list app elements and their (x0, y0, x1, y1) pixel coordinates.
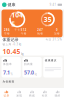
staticText: 运动 (45, 12, 51, 15)
button[interactable]: 商城 (26, 87, 38, 100)
button[interactable]: 社区 (38, 87, 51, 100)
staticText: kg (21, 52, 24, 56)
staticText: 加餐 (54, 32, 60, 35)
staticText: 体重记录 (2, 37, 18, 42)
staticText: 发现 (16, 94, 22, 97)
staticText: % (11, 72, 13, 76)
staticText: 体脂率 (3, 62, 12, 66)
staticText: 0 (56, 28, 58, 32)
staticText: 286 (4, 28, 10, 32)
staticText: 35 (44, 15, 52, 24)
staticText: 512 (21, 28, 27, 32)
staticText: 午餐 (21, 32, 27, 35)
staticText: 为你推荐 (2, 80, 14, 83)
staticText: 7.1 (3, 69, 10, 76)
staticText: 肌肉量 (24, 62, 33, 66)
staticText: 9:41 (49, 3, 56, 6)
staticText: 早餐 (4, 32, 10, 35)
staticText: 社区 (42, 94, 48, 97)
button[interactable]: 健康建议 (43, 57, 62, 77)
staticText: 分钟 (45, 24, 51, 27)
button[interactable]: 体脂率 (1, 57, 21, 77)
button[interactable]: 肌肉量 (22, 57, 42, 77)
staticText: 1045 (11, 10, 23, 28)
button[interactable]: 我的 (51, 87, 64, 100)
button[interactable]: 记录 (0, 87, 13, 100)
staticText: 我的 (55, 94, 61, 97)
staticText: kg (34, 72, 37, 76)
staticText: 健康 (8, 2, 16, 7)
staticText: 健康建议 (45, 59, 57, 62)
staticText: 247 (37, 28, 43, 32)
staticText: 今日 31.5% (45, 38, 61, 41)
staticText: 10.45 (2, 47, 20, 56)
button[interactable]: 发现 (13, 87, 26, 100)
staticText: 商城 (29, 94, 35, 97)
staticText: 记录 (3, 94, 9, 97)
staticText: 千卡 (14, 28, 20, 31)
staticText: 已摄入 (13, 7, 22, 11)
staticText: 57.0 (24, 69, 34, 76)
staticText: 晚餐 (37, 32, 43, 35)
staticText: 较上周 -0.3kg (2, 43, 21, 46)
